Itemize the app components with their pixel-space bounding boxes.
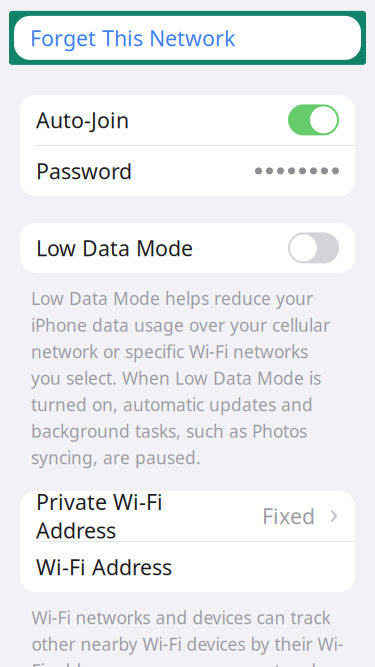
staticText: Low Data Mode	[36, 234, 193, 262]
button[interactable]: Wi-Fi Address	[20, 542, 355, 592]
staticText: Fixed	[262, 502, 315, 530]
button[interactable]: Auto-Join	[20, 95, 355, 145]
staticText: Wi-Fi networks and devices can track oth…	[31, 606, 343, 667]
staticText: Auto-Join	[36, 106, 129, 134]
staticText: Private Wi-Fi Address	[36, 488, 163, 544]
staticText: Password	[36, 157, 132, 185]
staticText: Low Data Mode helps reduce your iPhone d…	[31, 287, 330, 469]
staticText: Wi-Fi Address	[36, 553, 172, 581]
staticText: Forget This Network	[30, 24, 235, 52]
button[interactable]: Private Wi-Fi Address	[20, 491, 355, 541]
button[interactable]: Forget This Network	[0, 11, 375, 65]
button[interactable]: Low Data Mode	[20, 223, 355, 273]
button[interactable]: Password	[20, 146, 355, 196]
